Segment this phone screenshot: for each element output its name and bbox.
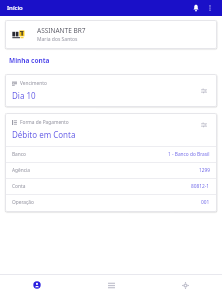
staticText: Forma de Pagamento [20,119,69,126]
button[interactable]: Notificações [189,1,203,15]
staticText: 001 [201,199,210,206]
staticText: Dia 10 [12,90,36,101]
staticText: ASSINANTE BR7 [37,26,86,35]
button[interactable]: Agência [5,163,217,178]
button[interactable]: Forma de Pagamento [5,113,217,212]
staticText: Vencimento [20,80,47,87]
staticText: Maria dos Santos [37,36,78,43]
staticText: 1299 [199,167,210,174]
staticText: Agência [12,167,30,174]
button[interactable]: Banco [5,147,217,162]
button[interactable]: Faturas [74,274,148,296]
staticText: Débito em Conta [12,129,76,140]
button[interactable]: Conta [0,274,74,296]
staticText: Início [7,4,23,12]
staticText: Operação [12,199,34,206]
button[interactable]: Vencimento [5,74,217,107]
button[interactable]: ASSINANTE BR7 [5,20,217,49]
staticText: Minha conta [9,56,50,65]
button[interactable]: Editar vencimento [198,85,210,97]
button[interactable]: Operação [5,195,217,210]
button[interactable]: Conta [5,179,217,194]
staticText: 80812-1 [191,183,210,190]
button[interactable]: Configurações [148,274,222,296]
button[interactable]: Mais opções [203,1,217,15]
staticText: 1 - Banco do Brasil [168,151,210,158]
staticText: Banco [12,151,26,158]
button[interactable]: Editar forma de pagamento [198,119,210,131]
staticText: Conta [12,183,26,190]
